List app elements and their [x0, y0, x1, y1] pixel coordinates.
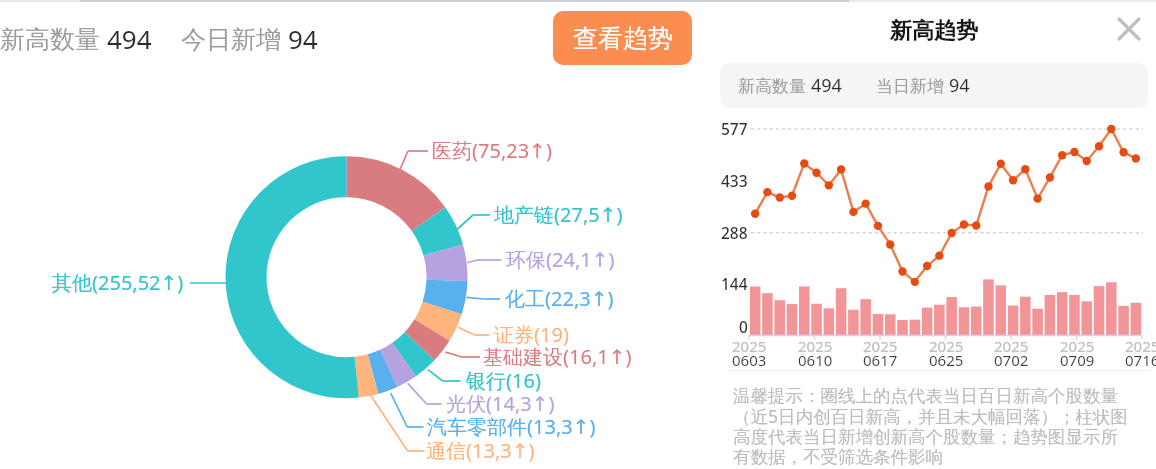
staticText: 其他(255,52↑): [52, 269, 184, 296]
staticText: 今日新增: [181, 21, 288, 55]
staticText: 288: [721, 222, 748, 243]
staticText: 2025: [732, 336, 767, 356]
staticText: 化工(22,3↑): [505, 285, 614, 312]
staticText: 汽车零部件(13,3↑): [427, 413, 596, 440]
staticText: 查看趋势: [573, 23, 673, 54]
staticText: 温馨提示：圈线上的点代表当日百日新高个股数量（近5日内创百日新高，并且未大幅回落…: [733, 385, 1133, 468]
staticText: 94: [949, 73, 970, 98]
staticText: 144: [721, 273, 748, 294]
staticText: 433: [721, 170, 748, 191]
staticText: 当日新增: [876, 74, 949, 97]
staticText: 2025: [929, 336, 964, 356]
staticText: 环保(24,1↑): [506, 246, 615, 273]
staticText: 证券(19): [494, 321, 569, 348]
staticText: 494: [811, 73, 842, 98]
staticText: 2025: [1125, 336, 1156, 356]
staticText: 0617: [863, 350, 898, 370]
button[interactable]: 查看趋势: [553, 11, 692, 65]
staticText: 医药(75,23↑): [432, 137, 552, 164]
staticText: 0625: [929, 350, 964, 370]
staticText: 494: [107, 21, 152, 56]
staticText: 0716: [1125, 350, 1156, 370]
staticText: 新高趋势: [890, 17, 978, 45]
staticText: 新高数量: [738, 74, 811, 97]
staticText: 2025: [1060, 336, 1095, 356]
staticText: 基础建设(16,1↑): [483, 343, 632, 370]
staticText: 新高数量: [0, 21, 107, 55]
staticText: 光伏(14,3↑): [446, 390, 555, 417]
staticText: 银行(16): [466, 367, 541, 394]
staticText: 2025: [994, 336, 1029, 356]
staticText: 94: [288, 21, 318, 56]
staticText: 0702: [994, 350, 1029, 370]
staticText: 通信(13,3↑): [426, 437, 535, 464]
button[interactable]: Close: [1112, 12, 1146, 46]
staticText: 0709: [1060, 350, 1095, 370]
staticText: 0: [739, 316, 748, 337]
staticText: 0610: [798, 350, 833, 370]
staticText: 地产链(27,5↑): [494, 201, 623, 228]
staticText: 577: [721, 118, 748, 139]
staticText: 0603: [732, 350, 767, 370]
staticText: 2025: [863, 336, 898, 356]
staticText: 2025: [798, 336, 833, 356]
